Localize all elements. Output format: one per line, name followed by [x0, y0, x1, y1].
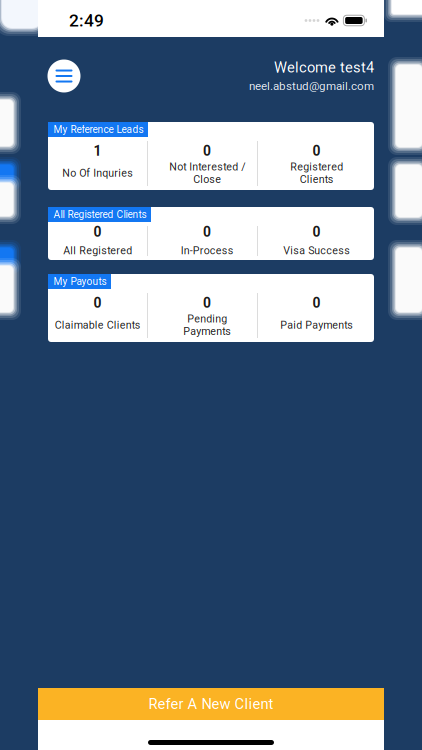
- staticText: 2:49: [69, 10, 104, 31]
- staticText: Refer A New Client: [148, 695, 273, 713]
- staticText: 1: [93, 143, 101, 159]
- staticText: Pending Payments: [183, 312, 231, 337]
- staticText: All Registered: [63, 244, 132, 257]
- staticText: 0: [203, 143, 211, 159]
- staticText: 0: [312, 295, 320, 311]
- staticText: Visa Success: [283, 244, 350, 257]
- staticText: My Payouts: [53, 276, 106, 287]
- staticText: 0: [203, 295, 211, 311]
- staticText: Welcome test4: [274, 59, 374, 76]
- staticText: In-Process: [180, 244, 233, 257]
- staticText: 0: [312, 224, 320, 240]
- staticText: No Of Inquries: [62, 167, 133, 179]
- staticText: All Registered Clients: [53, 209, 146, 220]
- staticText: 0: [93, 295, 101, 311]
- staticText: Registered Clients: [290, 160, 343, 185]
- staticText: Claimable Clients: [54, 319, 140, 331]
- staticText: 0: [93, 224, 101, 240]
- button[interactable]: Menu: [47, 59, 81, 93]
- staticText: My Reference Leads: [53, 124, 143, 135]
- staticText: Not Interested / Close: [169, 160, 245, 185]
- staticText: 0: [203, 224, 211, 240]
- staticText: neel.abstud@gmail.com: [249, 79, 374, 93]
- staticText: Paid Payments: [280, 319, 353, 331]
- staticText: 0: [312, 143, 320, 159]
- button[interactable]: Refer A New Client: [38, 688, 384, 720]
